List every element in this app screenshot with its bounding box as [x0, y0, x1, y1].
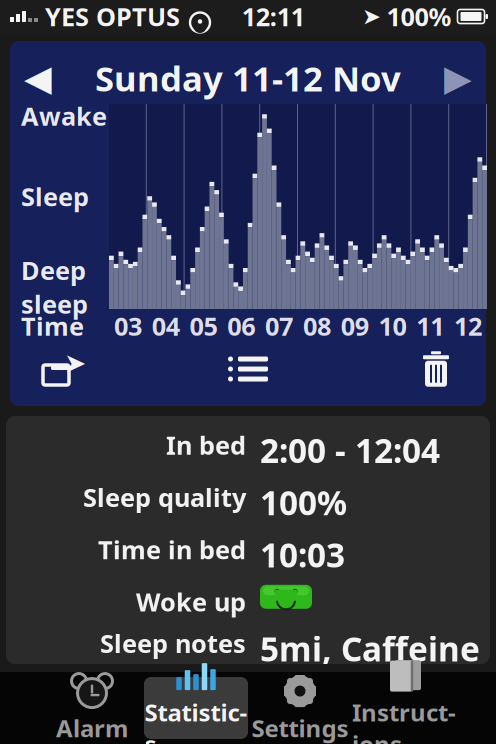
staticText: 10 [378, 309, 406, 343]
staticText: ➤ [64, 348, 86, 378]
staticText: Time in bed [98, 532, 246, 566]
staticText: 07 [265, 309, 293, 343]
staticText: 09 [341, 309, 369, 343]
staticText: 04 [152, 309, 180, 343]
staticText: Settings [251, 712, 348, 744]
staticText: Sleep quality [83, 480, 246, 514]
staticText: ➤ [362, 4, 381, 29]
staticText: Alarm [56, 712, 128, 744]
staticText: 12 [454, 309, 482, 343]
button[interactable]: Delete [401, 345, 471, 393]
staticText: Time [21, 309, 84, 343]
staticText: Deep [21, 253, 86, 287]
button[interactable]: Share [25, 345, 95, 393]
staticText: ◀ [24, 58, 52, 98]
staticText: 100% [386, 0, 451, 33]
staticText: In bed [166, 428, 246, 462]
button[interactable]: Statistics [144, 677, 248, 739]
staticText: ▶ [444, 58, 472, 98]
staticText: 06 [227, 309, 255, 343]
button[interactable]: List view [213, 345, 283, 393]
staticText: Sleep [21, 180, 89, 213]
staticText: 100% [260, 480, 347, 525]
staticText: 2:00 - 12:04 [260, 428, 440, 472]
staticText: Instructions [352, 696, 456, 744]
button[interactable]: Settings [248, 677, 352, 739]
staticText: Awake [21, 99, 107, 133]
staticText: 03 [114, 309, 142, 343]
staticText: Woke up [136, 585, 246, 618]
button[interactable]: Instructions [352, 677, 456, 739]
staticText: 5mi, Caffeine [260, 626, 480, 671]
staticText: sleep [21, 287, 88, 321]
staticText: 11 [416, 309, 444, 343]
staticText: Sunday 11-12 Nov [95, 55, 401, 101]
button[interactable]: Alarm [40, 677, 144, 739]
button[interactable]: Previous day [10, 56, 66, 100]
staticText: YES OPTUS [45, 0, 180, 33]
button[interactable]: Next day [430, 56, 486, 100]
staticText: Statistics [144, 696, 247, 744]
staticText: Sleep notes [100, 626, 246, 660]
staticText: today, Pills late, [260, 673, 441, 744]
staticText: 08 [303, 309, 331, 343]
staticText: 12:11 [242, 0, 305, 33]
staticText: 05 [189, 309, 217, 343]
staticText: 10:03 [260, 532, 345, 577]
